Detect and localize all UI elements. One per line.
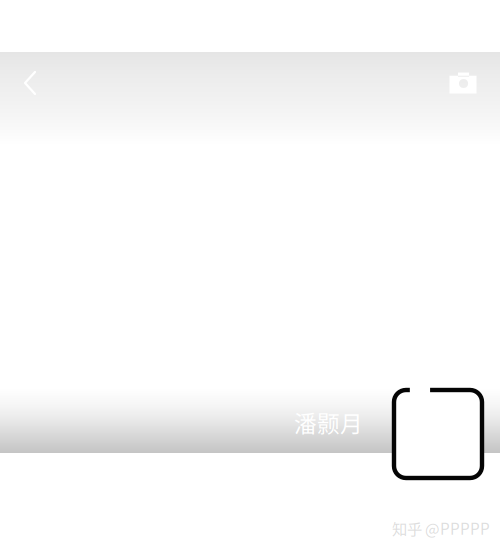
button[interactable]: Add photo [392,388,484,480]
staticText: 知乎 @PPPPP [392,517,490,539]
button[interactable]: Camera [441,61,485,105]
staticText: 潘颢月 [294,406,363,439]
button[interactable]: Back [8,61,52,105]
